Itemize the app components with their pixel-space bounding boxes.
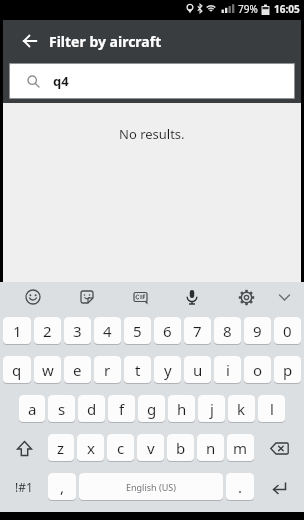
button[interactable] bbox=[11, 21, 49, 61]
staticText: x bbox=[87, 438, 95, 458]
button[interactable]: r bbox=[94, 356, 121, 384]
staticText: j bbox=[210, 399, 214, 419]
button[interactable]: l bbox=[258, 395, 285, 423]
button[interactable]: . bbox=[226, 473, 254, 501]
staticText: b bbox=[176, 438, 186, 458]
button[interactable]: d bbox=[78, 395, 105, 423]
staticText: u bbox=[193, 360, 203, 380]
button[interactable]: 6 bbox=[154, 317, 181, 345]
button[interactable]: q bbox=[3, 356, 31, 384]
button[interactable]: 4 bbox=[94, 317, 121, 345]
button[interactable] bbox=[273, 286, 295, 308]
button[interactable]: , bbox=[48, 473, 76, 501]
button[interactable]: 9 bbox=[244, 317, 271, 345]
button[interactable] bbox=[74, 284, 100, 310]
button[interactable]: u bbox=[184, 356, 211, 384]
staticText: l bbox=[270, 399, 274, 419]
button[interactable]: f bbox=[108, 395, 135, 423]
button[interactable]: 2 bbox=[34, 317, 61, 345]
staticText: q bbox=[12, 360, 22, 380]
staticText: q4 bbox=[53, 72, 69, 90]
staticText: d bbox=[87, 399, 97, 419]
button[interactable] bbox=[257, 473, 301, 501]
button[interactable]: m bbox=[227, 434, 254, 462]
staticText: t bbox=[135, 360, 141, 380]
staticText: w bbox=[42, 360, 54, 380]
staticText: 1 bbox=[13, 321, 22, 341]
button[interactable]: q4 bbox=[9, 63, 295, 99]
staticText: c bbox=[117, 438, 125, 458]
button[interactable]: c bbox=[107, 434, 134, 462]
staticText: !#1 bbox=[15, 479, 33, 495]
staticText: 0 bbox=[283, 321, 292, 341]
staticText: o bbox=[253, 360, 263, 380]
button[interactable]: h bbox=[168, 395, 195, 423]
staticText: f bbox=[119, 399, 125, 419]
staticText: No results. bbox=[119, 125, 185, 143]
button[interactable]: k bbox=[228, 395, 255, 423]
button[interactable]: p bbox=[274, 356, 301, 384]
button[interactable] bbox=[179, 284, 205, 310]
staticText: Filter by aircraft bbox=[49, 32, 162, 51]
button[interactable]: 5 bbox=[124, 317, 151, 345]
staticText: 9 bbox=[253, 321, 262, 341]
button[interactable]: 1 bbox=[3, 317, 31, 345]
staticText: z bbox=[57, 438, 65, 458]
button[interactable]: !#1 bbox=[3, 473, 45, 501]
staticText: 79% bbox=[238, 2, 258, 16]
staticText: e bbox=[73, 360, 82, 380]
button[interactable]: z bbox=[48, 434, 74, 462]
staticText: English (US) bbox=[126, 481, 176, 493]
button[interactable]: g bbox=[138, 395, 165, 423]
staticText: 4 bbox=[103, 321, 112, 341]
button[interactable]: b bbox=[167, 434, 194, 462]
staticText: y bbox=[164, 360, 172, 380]
button[interactable] bbox=[233, 284, 259, 310]
button[interactable]: t bbox=[124, 356, 151, 384]
staticText: 5 bbox=[133, 321, 142, 341]
staticText: 16:05 bbox=[274, 2, 300, 16]
button[interactable]: a bbox=[19, 395, 45, 423]
button[interactable]: v bbox=[137, 434, 164, 462]
staticText: m bbox=[233, 438, 248, 458]
staticText: v bbox=[147, 438, 155, 458]
staticText: 6 bbox=[163, 321, 172, 341]
button[interactable] bbox=[3, 434, 45, 462]
button[interactable]: e bbox=[64, 356, 91, 384]
staticText: s bbox=[58, 399, 66, 419]
button[interactable] bbox=[257, 434, 301, 462]
staticText: r bbox=[104, 360, 111, 380]
button[interactable]: o bbox=[244, 356, 271, 384]
staticText: 8 bbox=[223, 321, 232, 341]
staticText: 3 bbox=[73, 321, 82, 341]
staticText: a bbox=[28, 399, 37, 419]
staticText: , bbox=[60, 477, 65, 497]
staticText: k bbox=[237, 399, 246, 419]
button[interactable]: 0 bbox=[274, 317, 301, 345]
staticText: p bbox=[283, 360, 293, 380]
staticText: h bbox=[177, 399, 187, 419]
button[interactable] bbox=[20, 284, 46, 310]
button[interactable]: y bbox=[154, 356, 181, 384]
staticText: 2 bbox=[43, 321, 52, 341]
button[interactable]: s bbox=[48, 395, 75, 423]
button[interactable]: x bbox=[77, 434, 104, 462]
staticText: i bbox=[226, 360, 230, 380]
button[interactable]: 3 bbox=[64, 317, 91, 345]
button[interactable]: j bbox=[198, 395, 225, 423]
staticText: g bbox=[147, 399, 157, 419]
staticText: 7 bbox=[193, 321, 202, 341]
staticText: n bbox=[206, 438, 216, 458]
button[interactable]: English (US) bbox=[79, 473, 223, 501]
button[interactable]: 8 bbox=[214, 317, 241, 345]
staticText: . bbox=[238, 477, 243, 497]
button[interactable]: i bbox=[214, 356, 241, 384]
button[interactable] bbox=[127, 284, 153, 310]
button[interactable]: 7 bbox=[184, 317, 211, 345]
button[interactable]: n bbox=[197, 434, 224, 462]
button[interactable]: w bbox=[34, 356, 61, 384]
